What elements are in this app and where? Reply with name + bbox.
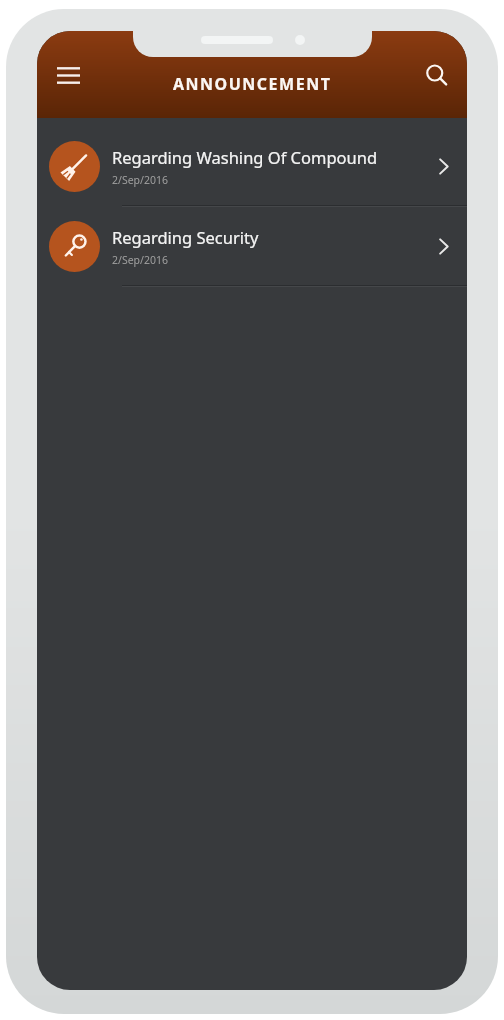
staticText: Regarding Security bbox=[112, 226, 259, 248]
staticText: 2/Sep/2016 bbox=[112, 253, 168, 267]
button[interactable]: Search bbox=[413, 52, 459, 98]
button[interactable]: Open navigation menu bbox=[45, 52, 91, 98]
staticText: Regarding Washing Of Compound bbox=[112, 146, 378, 168]
button[interactable]: Regarding Security bbox=[37, 207, 467, 285]
staticText: 2/Sep/2016 bbox=[112, 173, 168, 187]
button[interactable]: Regarding Washing Of Compound bbox=[37, 127, 467, 205]
staticText: ANNOUNCEMENT bbox=[173, 73, 332, 95]
